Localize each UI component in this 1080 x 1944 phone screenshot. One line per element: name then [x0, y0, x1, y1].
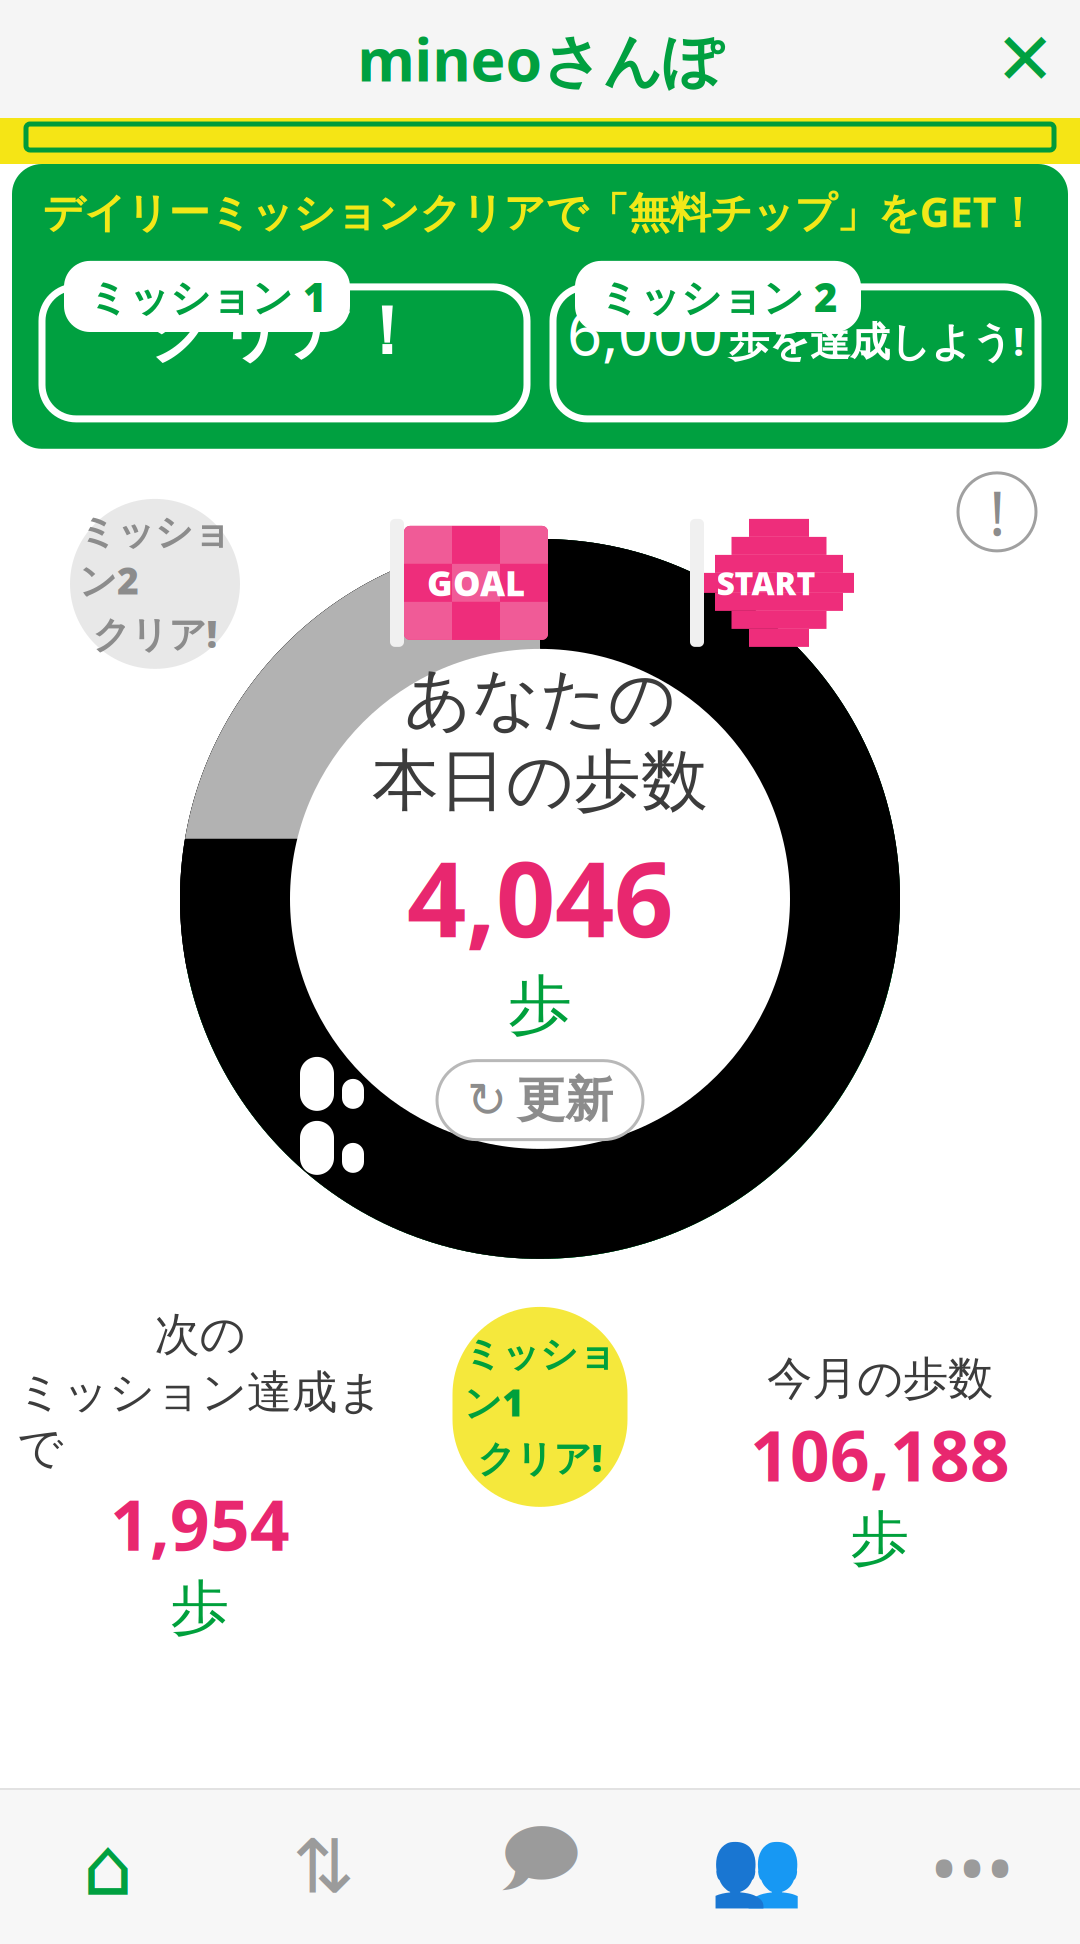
staticText: mineoさんぽ	[357, 20, 722, 98]
button[interactable]: コミュニティ	[432, 1790, 648, 1944]
staticText: 👥	[709, 1824, 802, 1910]
staticText: •••	[930, 1817, 1014, 1917]
staticText: あなたの	[404, 658, 676, 740]
staticText: ミッション2	[79, 509, 231, 605]
staticText: 次の	[154, 1307, 245, 1363]
button[interactable]: データ	[216, 1790, 432, 1944]
staticText: GOAL	[427, 560, 525, 606]
staticText: 更新	[517, 1071, 613, 1130]
staticText: クリア!	[477, 1433, 602, 1482]
staticText: START	[716, 562, 815, 604]
staticText: デイリーミッションクリアで「無料チップ」をGET！	[42, 184, 1037, 239]
staticText: ミッション達成まで	[17, 1365, 383, 1476]
staticText: 今月の歩数	[767, 1351, 993, 1407]
staticText: ⇅	[292, 1825, 355, 1909]
staticText: 6,000	[567, 291, 723, 372]
staticText: ↻	[467, 1073, 507, 1127]
button[interactable]: ↻	[437, 1061, 643, 1140]
staticText: ミッション 2	[599, 270, 837, 323]
staticText: 106,188	[750, 1409, 1010, 1501]
button[interactable]: マイページ	[648, 1790, 864, 1944]
staticText: 1,954	[110, 1478, 290, 1570]
staticText: ⌂	[82, 1822, 133, 1912]
button[interactable]: その他	[864, 1790, 1080, 1944]
staticText: 4,046	[407, 828, 673, 966]
staticText: 歩を達成しよう!	[729, 314, 1024, 367]
staticText: 🗩	[498, 1805, 581, 1929]
staticText: 歩	[170, 1572, 229, 1644]
staticText: 歩	[508, 966, 572, 1045]
button[interactable]: ホーム	[0, 1790, 216, 1944]
staticText: ミッション1	[464, 1331, 616, 1427]
staticText: ミッション 1	[88, 270, 326, 323]
button[interactable]: 説明	[942, 457, 1052, 567]
button[interactable]: 閉じる	[970, 4, 1080, 114]
staticText: 本日の歩数	[372, 740, 708, 822]
staticText: 歩	[850, 1503, 909, 1575]
staticText: !	[989, 471, 1005, 553]
staticText: クリア!	[92, 609, 217, 658]
staticText: ✕	[995, 18, 1055, 100]
staticText: クリア！	[149, 291, 420, 373]
